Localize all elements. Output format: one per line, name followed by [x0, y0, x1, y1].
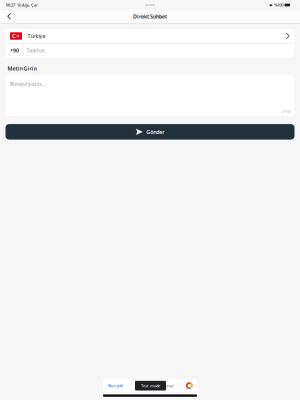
- staticText: ed ad.: [164, 383, 174, 388]
- staticText: Telefon: [27, 47, 45, 54]
- staticText: 00:27 16 Ağu Çar: [6, 2, 38, 8]
- staticText: Nice job!: [108, 383, 123, 388]
- staticText: %100: [274, 2, 283, 8]
- button[interactable]: Nice job!: [103, 379, 197, 392]
- button[interactable]: Gönder: [5, 124, 294, 140]
- button[interactable]: Türkiye: [5, 29, 294, 43]
- staticText: Metin Girin: [7, 65, 36, 72]
- staticText: Gönder: [146, 128, 164, 135]
- staticText: Test mode: [141, 383, 160, 388]
- staticText: Buraya yazın...: [10, 80, 44, 87]
- staticText: Türkiye: [27, 32, 45, 40]
- staticText: Direkt Sohbet: [133, 13, 167, 20]
- staticText: 0/160: [281, 109, 290, 114]
- staticText: +90: [10, 47, 19, 54]
- button[interactable]: Back: [0, 10, 17, 23]
